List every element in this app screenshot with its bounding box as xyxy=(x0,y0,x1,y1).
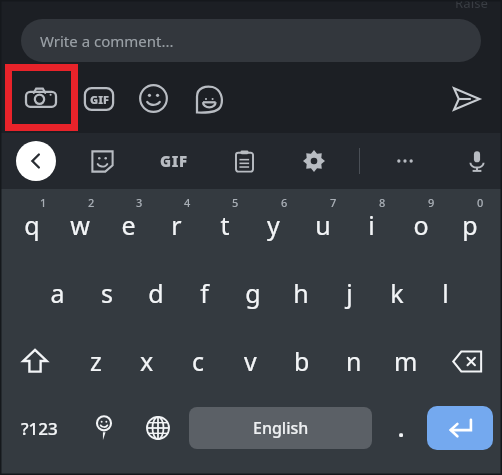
button[interactable]: k xyxy=(373,259,421,327)
staticText: g xyxy=(245,276,261,310)
staticText: 8 xyxy=(379,195,386,210)
button[interactable]: . xyxy=(375,395,427,461)
button[interactable]: Stickers xyxy=(80,139,124,183)
button[interactable]: Emoji and comma xyxy=(78,395,130,461)
staticText: Write a comment... xyxy=(40,31,174,51)
button[interactable]: Emoji xyxy=(131,76,176,121)
button[interactable]: More options xyxy=(383,139,427,183)
staticText: o xyxy=(413,208,429,242)
button[interactable]: m xyxy=(380,327,432,395)
button[interactable]: Backspace xyxy=(432,327,502,395)
button[interactable]: h xyxy=(277,259,325,327)
staticText: 4 xyxy=(184,195,191,210)
button[interactable]: f xyxy=(180,259,229,327)
staticText: 6 xyxy=(281,195,288,210)
staticText: m xyxy=(394,344,418,378)
staticText: j xyxy=(346,276,353,310)
staticText: 9 xyxy=(428,195,435,210)
button[interactable]: v xyxy=(224,327,276,395)
button[interactable]: p xyxy=(445,191,494,259)
staticText: k xyxy=(390,276,404,310)
button[interactable]: Settings xyxy=(292,139,336,183)
button[interactable]: GIF keyboard xyxy=(152,139,196,183)
button[interactable]: Enter xyxy=(427,406,493,450)
button[interactable]: q xyxy=(8,191,56,259)
staticText: e xyxy=(121,208,136,242)
staticText: t xyxy=(220,208,230,242)
staticText: . xyxy=(398,413,405,443)
staticText: x xyxy=(140,344,154,378)
staticText: 0 xyxy=(477,195,484,210)
button[interactable]: n xyxy=(328,327,380,395)
button[interactable]: j xyxy=(325,259,373,327)
button[interactable]: y xyxy=(249,191,298,259)
button[interactable]: English xyxy=(189,407,372,449)
button[interactable]: i xyxy=(347,191,396,259)
staticText: b xyxy=(294,344,310,378)
button[interactable]: Camera xyxy=(18,76,63,121)
button[interactable]: g xyxy=(229,259,277,327)
button[interactable]: z xyxy=(70,327,121,395)
staticText: f xyxy=(200,276,209,310)
staticText: 1 xyxy=(40,195,47,210)
staticText: ?123 xyxy=(21,417,58,440)
button[interactable]: Send xyxy=(443,76,488,121)
button[interactable]: s xyxy=(82,259,131,327)
staticText: r xyxy=(171,208,182,242)
button[interactable]: d xyxy=(131,259,180,327)
button[interactable]: b xyxy=(276,327,328,395)
staticText: u xyxy=(315,208,331,242)
staticText: GIF xyxy=(160,151,188,171)
staticText: v xyxy=(244,344,257,378)
button[interactable]: c xyxy=(172,327,224,395)
staticText: 5 xyxy=(232,195,239,210)
staticText: 2 xyxy=(88,195,95,210)
staticText: s xyxy=(101,276,113,310)
button[interactable]: w xyxy=(56,191,104,259)
staticText: a xyxy=(50,276,65,310)
staticText: q xyxy=(24,208,40,242)
button[interactable]: Avatar sticker xyxy=(186,76,231,121)
button[interactable]: ?123 xyxy=(0,395,78,461)
button[interactable]: e xyxy=(104,191,152,259)
staticText: c xyxy=(192,344,205,378)
staticText: GIF xyxy=(90,92,109,107)
staticText: 7 xyxy=(330,195,337,210)
button[interactable]: Shift xyxy=(0,327,70,395)
button[interactable]: x xyxy=(121,327,172,395)
button[interactable]: Change language xyxy=(130,395,186,461)
button[interactable]: GIF xyxy=(76,76,121,121)
button[interactable]: Clipboard xyxy=(222,139,266,183)
staticText: y xyxy=(267,208,280,242)
button[interactable]: Voice input xyxy=(455,139,499,183)
staticText: p xyxy=(462,208,478,242)
staticText: d xyxy=(148,276,164,310)
button[interactable]: l xyxy=(421,259,469,327)
staticText: 3 xyxy=(136,195,143,210)
staticText: h xyxy=(293,276,309,310)
staticText: z xyxy=(90,344,102,378)
button[interactable]: Write a comment... xyxy=(21,19,481,62)
staticText: w xyxy=(70,208,90,242)
button[interactable]: u xyxy=(298,191,347,259)
button[interactable]: o xyxy=(396,191,445,259)
button[interactable]: r xyxy=(152,191,200,259)
button[interactable]: t xyxy=(200,191,249,259)
staticText: n xyxy=(346,344,362,378)
staticText: i xyxy=(368,208,375,242)
button[interactable]: Back xyxy=(16,141,56,181)
staticText: Raise xyxy=(455,0,488,12)
staticText: l xyxy=(442,276,449,310)
staticText: English xyxy=(253,417,309,439)
button[interactable]: a xyxy=(33,259,82,327)
